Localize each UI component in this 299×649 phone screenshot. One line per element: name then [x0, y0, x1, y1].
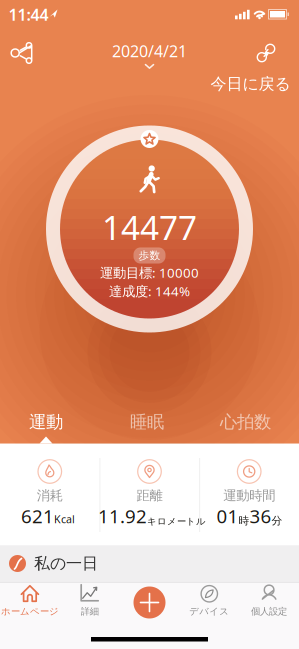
button[interactable]: Add — [133, 586, 165, 618]
staticText: 消耗 — [37, 487, 63, 504]
button[interactable]: デバイス — [189, 585, 229, 617]
staticText: 運動時間 — [223, 487, 275, 504]
staticText: 歩数 — [138, 249, 160, 262]
button[interactable]: 今日に戻る — [210, 74, 290, 94]
staticText: 距離 — [136, 487, 162, 504]
button[interactable]: 心拍数 — [220, 411, 271, 433]
staticText: 心拍数 — [220, 411, 271, 433]
staticText: 01時36分 — [216, 504, 282, 528]
staticText: 11.92キロメートル — [98, 504, 206, 528]
staticText: 11:44 — [8, 4, 48, 25]
button[interactable]: 私の一日 — [0, 545, 299, 582]
staticText: 運動 — [29, 411, 63, 433]
staticText: 運動目標: 10000 — [100, 264, 199, 281]
staticText: 14477 — [102, 205, 197, 249]
staticText: デバイス — [189, 606, 229, 617]
staticText: 睡眠 — [130, 411, 164, 433]
staticText: 621Kcal — [21, 504, 75, 528]
button[interactable]: 詳細 — [80, 585, 99, 617]
staticText: ホームページ — [1, 606, 59, 617]
button[interactable]: 個人設定 — [251, 585, 287, 617]
button[interactable]: ホームページ — [1, 585, 59, 617]
button[interactable]: Share — [8, 42, 34, 64]
button[interactable]: 運動 — [29, 411, 63, 433]
button[interactable]: 睡眠 — [130, 411, 164, 433]
staticText: 詳細 — [81, 606, 99, 617]
button[interactable]: Select date — [112, 40, 187, 70]
staticText: 個人設定 — [251, 606, 287, 617]
button[interactable]: Sync — [256, 43, 276, 63]
staticText: 今日に戻る — [210, 74, 290, 94]
staticText: 私の一日 — [34, 554, 98, 573]
staticText: 2020/4/21 — [112, 40, 187, 62]
staticText: 達成度: 144% — [109, 282, 190, 300]
